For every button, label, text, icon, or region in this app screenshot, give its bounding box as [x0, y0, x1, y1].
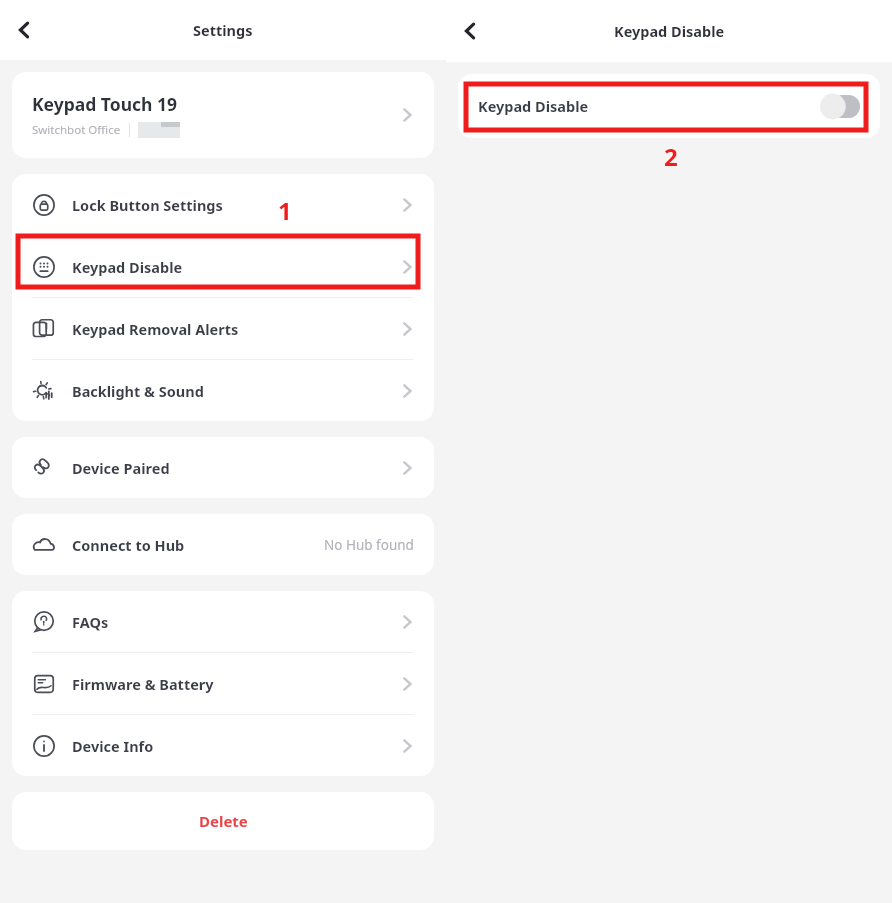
staticText: 2	[664, 140, 678, 173]
button[interactable]: Keypad Touch 19	[12, 72, 434, 158]
button[interactable]: Firmware & Battery	[12, 653, 434, 714]
button[interactable]: Keypad Disable toggle	[820, 95, 860, 118]
staticText: 1	[278, 194, 292, 227]
button[interactable]: FAQs	[12, 591, 434, 652]
staticText: No Hub found	[324, 536, 414, 554]
staticText: Firmware & Battery	[72, 674, 396, 694]
staticText: Delete	[199, 811, 248, 831]
button[interactable]: Back	[448, 9, 492, 53]
button[interactable]: Device Info	[12, 715, 434, 776]
button[interactable]: Back	[2, 8, 46, 52]
staticText: Settings	[193, 20, 253, 40]
button[interactable]: Backlight & Sound	[12, 360, 434, 421]
staticText: Keypad Disable	[72, 257, 396, 277]
staticText: Keypad Touch 19	[32, 92, 178, 116]
staticText: Keypad Removal Alerts	[72, 319, 396, 339]
button[interactable]: Keypad Removal Alerts	[12, 298, 434, 359]
staticText: Keypad Disable	[614, 21, 725, 41]
button[interactable]: Device Paired	[12, 437, 434, 498]
button[interactable]: Keypad Disable	[12, 236, 434, 297]
staticText: FAQs	[72, 612, 396, 632]
staticText: Backlight & Sound	[72, 381, 396, 401]
staticText: Device Info	[72, 736, 396, 756]
button[interactable]: Keypad Disable	[458, 74, 880, 138]
staticText: Connect to Hub	[72, 535, 324, 555]
staticText: Lock Button Settings	[72, 195, 396, 215]
button[interactable]: Connect to Hub	[12, 514, 434, 575]
staticText: Keypad Disable	[478, 96, 820, 116]
staticText: Switchbot Office	[32, 122, 121, 138]
staticText: Device Paired	[72, 458, 396, 478]
button[interactable]: Lock Button Settings	[12, 174, 434, 235]
button[interactable]: Delete	[12, 792, 434, 850]
